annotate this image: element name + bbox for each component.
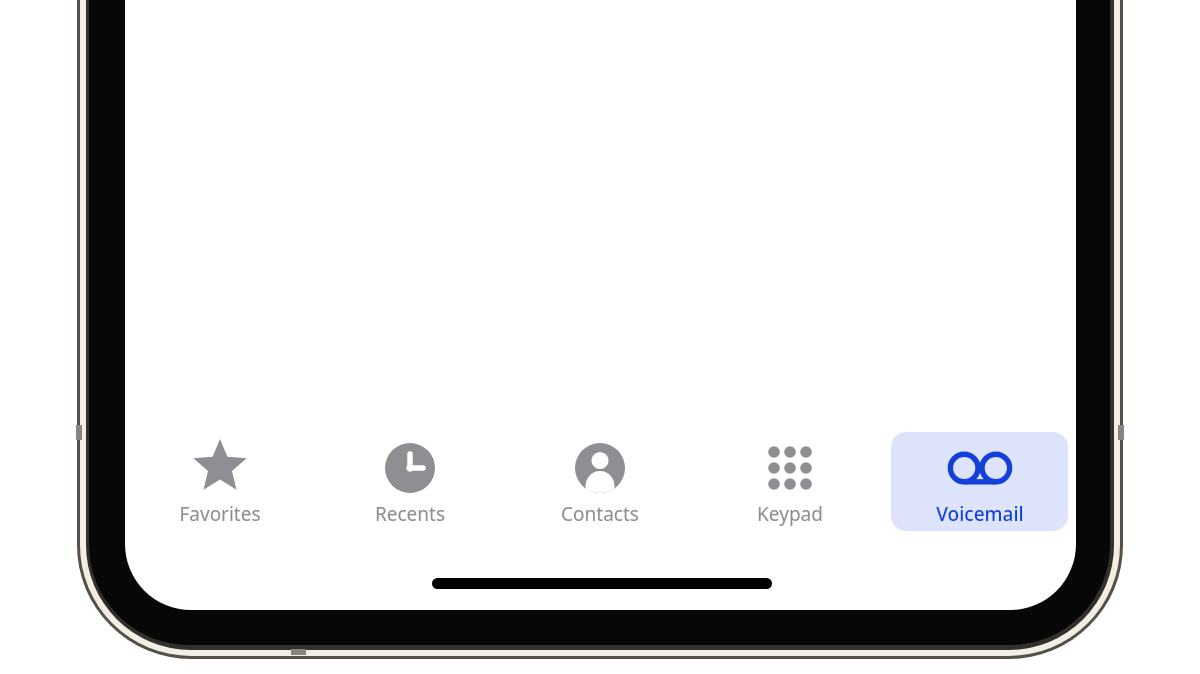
button[interactable]: Voicemail xyxy=(905,432,1055,531)
button[interactable]: Keypad xyxy=(715,432,865,531)
staticText: Voicemail xyxy=(905,501,1055,527)
button[interactable]: Favorites xyxy=(145,432,295,531)
staticText: Keypad xyxy=(715,501,865,527)
button[interactable]: Contacts xyxy=(525,432,675,531)
button[interactable]: Recents xyxy=(335,432,485,531)
staticText: Favorites xyxy=(145,501,295,527)
staticText: Contacts xyxy=(525,501,675,527)
staticText: Recents xyxy=(335,501,485,527)
